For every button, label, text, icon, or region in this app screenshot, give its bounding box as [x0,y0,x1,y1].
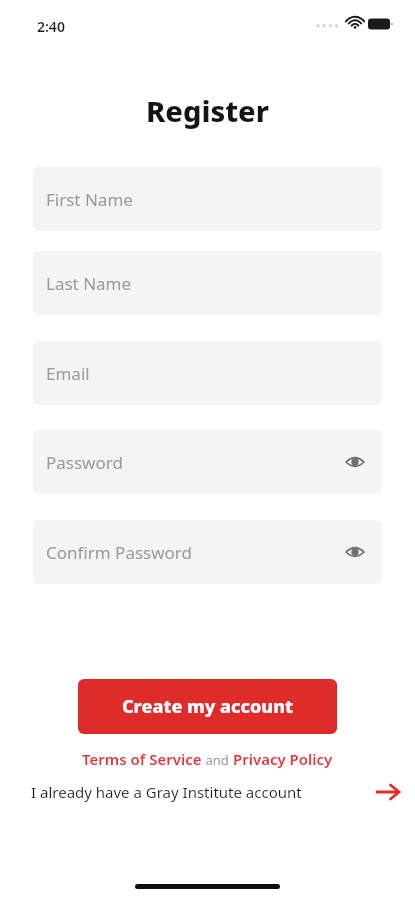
button[interactable]: Confirm Password [33,520,382,584]
button[interactable]: Password [33,430,382,494]
button[interactable]: First Name [33,167,382,231]
staticText: First Name [46,188,133,211]
staticText: I already have a Gray Institute account [31,782,302,802]
button[interactable]: Terms of Service [82,749,202,769]
button[interactable]: Show password [342,449,368,475]
staticText: Privacy Policy [233,749,333,769]
staticText: Password [46,451,123,474]
button[interactable]: Privacy Policy [233,749,333,769]
staticText: Confirm Password [46,541,192,564]
staticText: Terms of Service [82,749,202,769]
staticText: and [202,751,233,769]
button[interactable]: I already have a Gray Institute account [0,779,415,805]
staticText: Email [46,362,90,385]
button[interactable]: Email [33,341,382,405]
button[interactable]: Show password [342,539,368,565]
button[interactable]: Last Name [33,251,382,315]
staticText: Register [0,91,415,130]
staticText: Create my account [122,694,294,719]
staticText: 2:40 [37,17,65,36]
button[interactable]: Create my account [78,679,337,734]
staticText: Last Name [46,272,132,295]
other: Sign in [375,779,401,805]
